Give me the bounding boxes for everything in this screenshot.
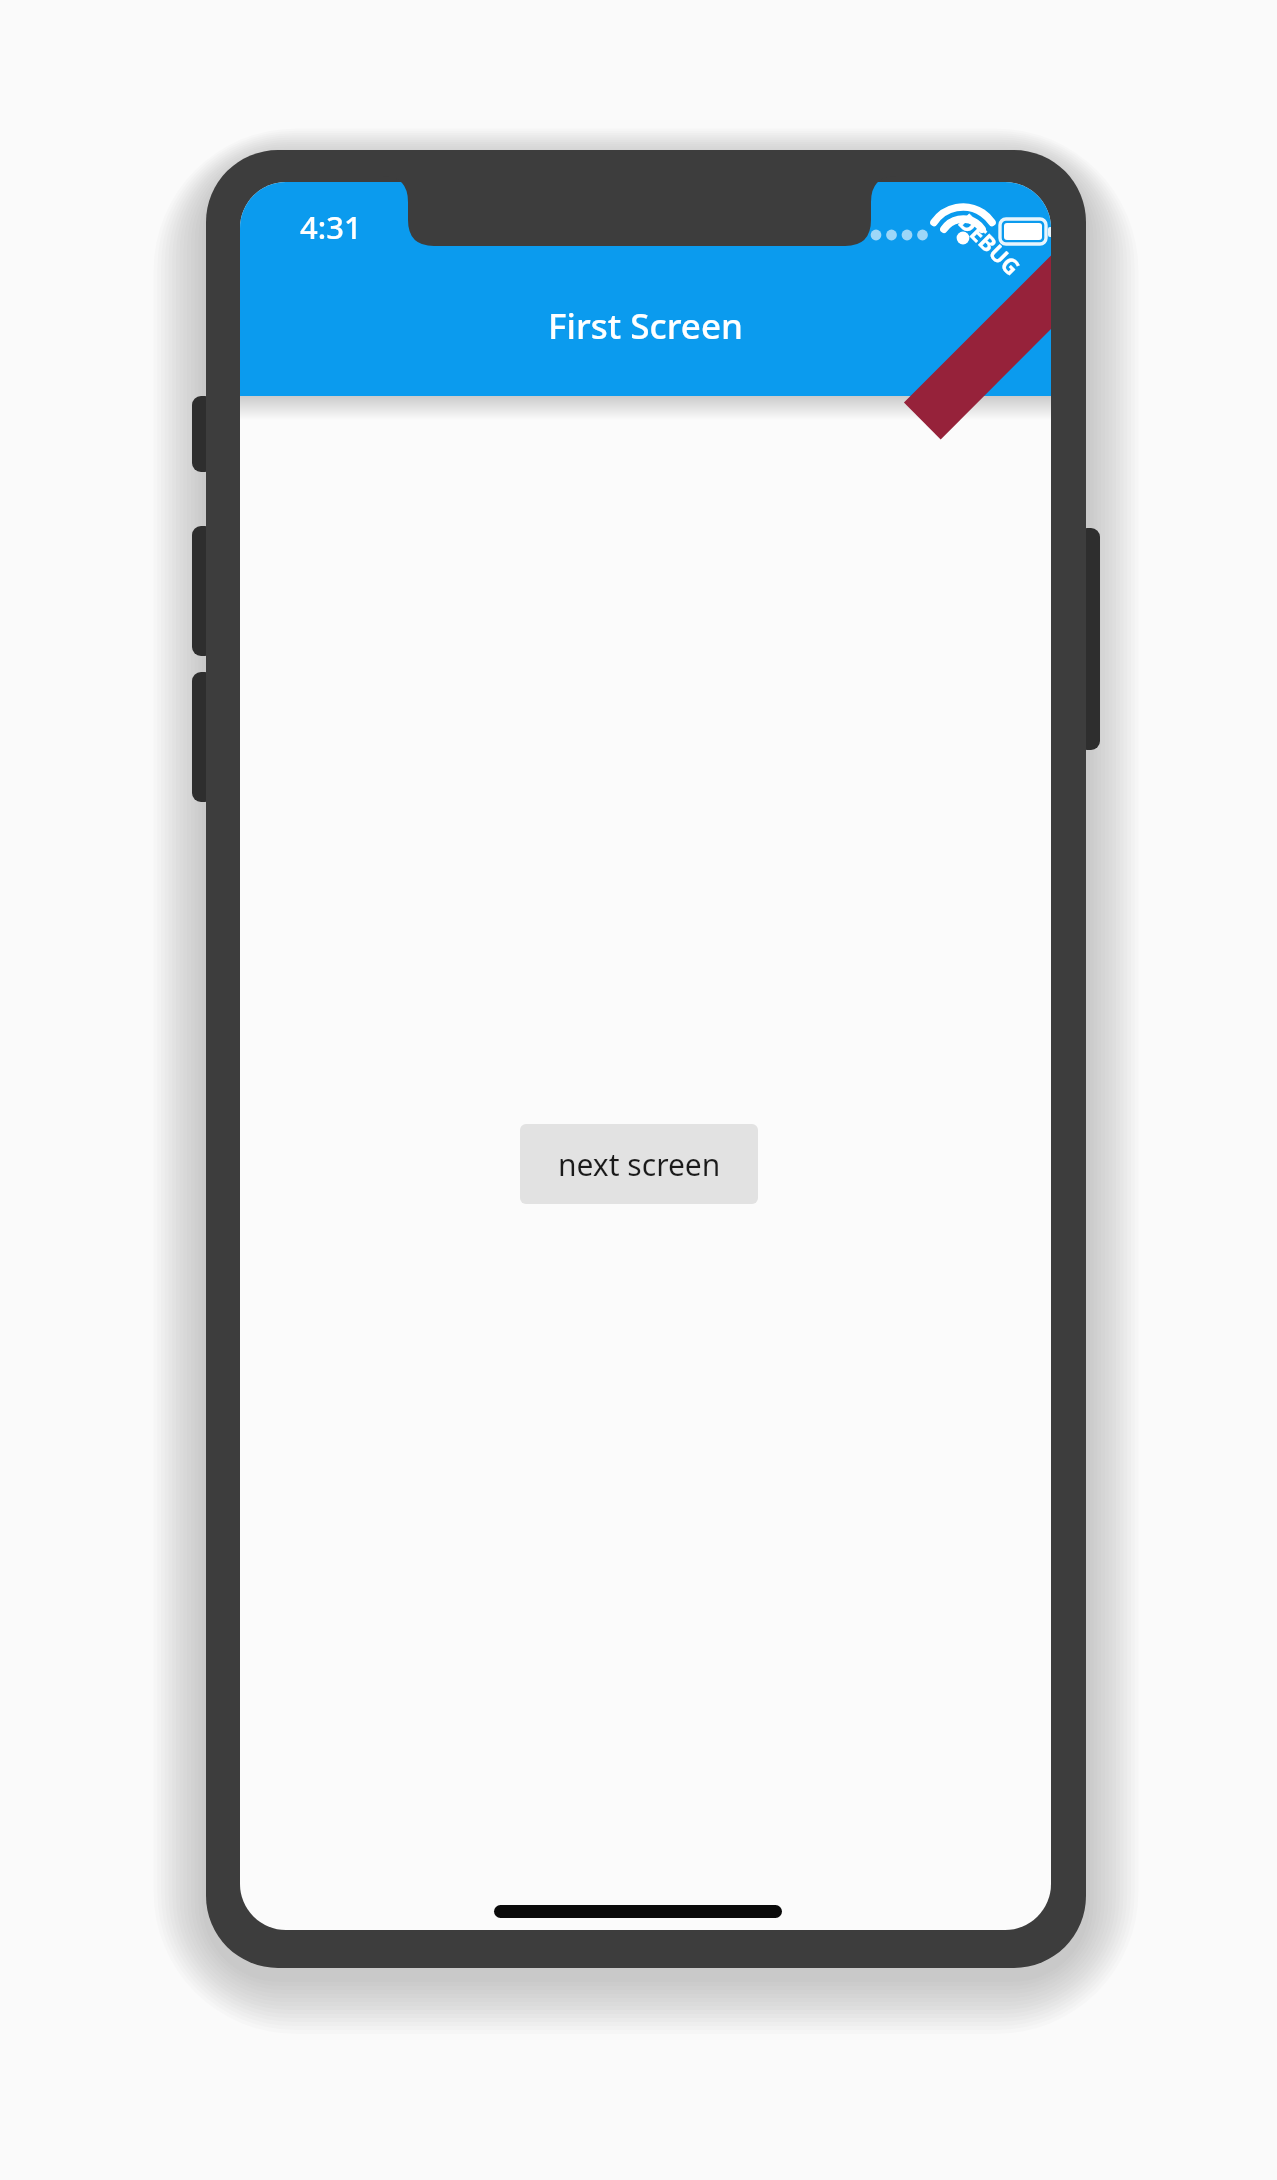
- button[interactable]: next screen: [520, 1124, 758, 1204]
- staticText: 4:31: [300, 206, 362, 248]
- staticText: next screen: [558, 1144, 721, 1185]
- staticText: First Screen: [240, 302, 1051, 352]
- staticText: DEBUG: [952, 206, 1027, 281]
- other: Debug banner: [905, 159, 1075, 329]
